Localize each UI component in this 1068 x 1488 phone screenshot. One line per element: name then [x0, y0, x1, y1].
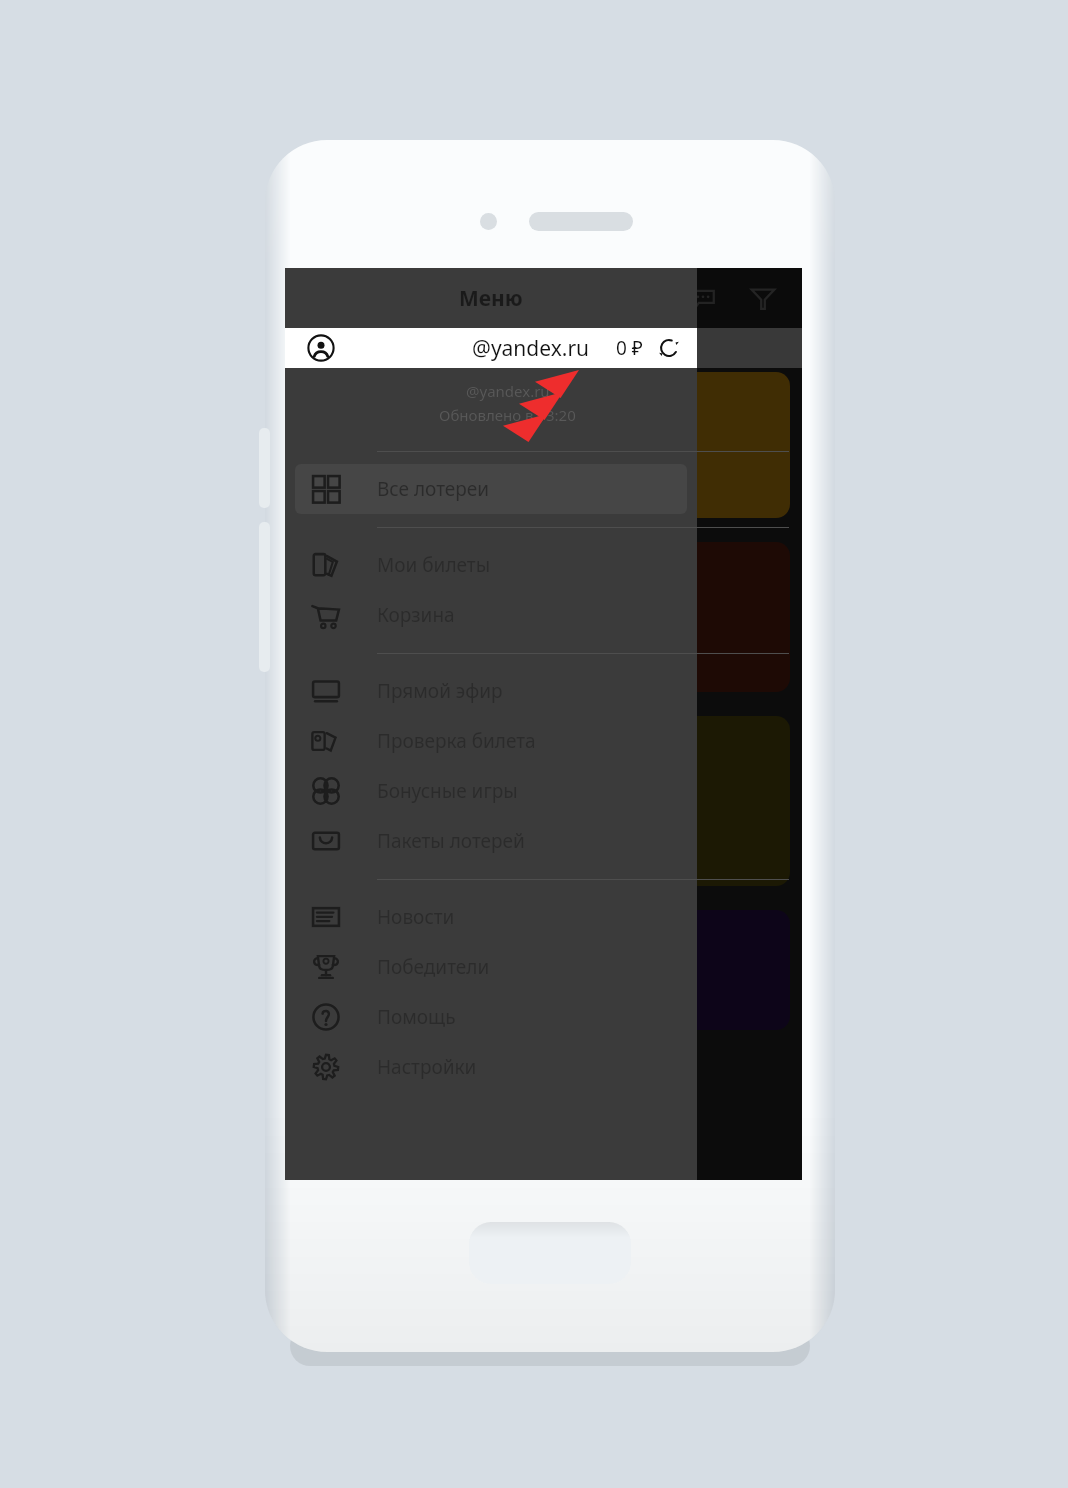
staticText: Все лотереи: [377, 476, 490, 502]
button[interactable]: Помощь: [295, 992, 687, 1042]
button[interactable]: Прямой эфир: [295, 666, 687, 716]
button[interactable]: @yandex.ru: [285, 328, 697, 368]
button[interactable]: [297, 372, 534, 518]
staticText: Мои билеты: [377, 552, 491, 578]
staticText: Помощь: [377, 1004, 456, 1030]
button[interactable]: Filter: [748, 283, 778, 313]
button[interactable]: Проверка билета: [295, 716, 687, 766]
button[interactable]: [552, 910, 790, 1030]
button[interactable]: [552, 372, 790, 518]
button[interactable]: Мои билеты: [295, 540, 687, 590]
button[interactable]: [552, 542, 790, 692]
staticText: Победители: [377, 954, 490, 980]
button[interactable]: [297, 910, 534, 1030]
staticText: Корзина: [377, 602, 455, 628]
staticText: 0 ₽: [616, 335, 643, 361]
staticText: Обновлено в 13:20: [439, 405, 576, 425]
staticText: Пакеты лотерей: [377, 828, 525, 854]
other: Refresh: [657, 336, 681, 360]
button[interactable]: Победители: [295, 942, 687, 992]
staticText: @yandex.ru: [472, 334, 590, 363]
button[interactable]: Настройки: [295, 1042, 687, 1092]
staticText: Бонусные игры: [377, 778, 518, 804]
button[interactable]: Home: [469, 1222, 631, 1284]
button[interactable]: [552, 716, 790, 886]
button[interactable]: Бонусные игры: [295, 766, 687, 816]
button[interactable]: Chat: [688, 283, 718, 313]
staticText: Проверка билета: [377, 728, 536, 754]
button[interactable]: [297, 716, 534, 886]
staticText: Меню: [459, 284, 523, 313]
button[interactable]: Все лотереи: [295, 464, 687, 514]
button[interactable]: Пакеты лотерей: [295, 816, 687, 866]
staticText: @yandex.ru: [466, 381, 550, 401]
button[interactable]: Корзина: [295, 590, 687, 640]
staticText: Настройки: [377, 1054, 477, 1080]
button[interactable]: [297, 542, 534, 692]
button[interactable]: Новости: [295, 892, 687, 942]
staticText: Новости: [377, 904, 455, 930]
staticText: Прямой эфир: [377, 678, 503, 704]
